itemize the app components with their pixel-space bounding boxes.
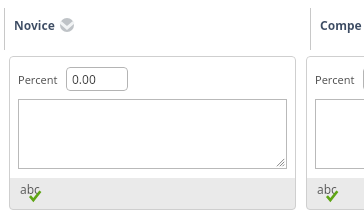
staticText: 0.00 — [72, 71, 96, 87]
staticText: Novice — [14, 17, 55, 33]
button[interactable] — [315, 99, 364, 169]
staticText: abc — [20, 181, 40, 197]
staticText: Compe — [320, 17, 362, 33]
button[interactable]: Compe — [320, 17, 362, 33]
staticText: Percent — [18, 72, 58, 87]
button[interactable]: Spell check passed — [316, 181, 346, 205]
button[interactable]: Spell check passed — [19, 181, 49, 205]
button[interactable]: Collapse section — [60, 18, 74, 32]
button[interactable]: Novice — [14, 17, 74, 33]
staticText: Percent — [315, 72, 355, 87]
button[interactable]: 0.00 — [66, 67, 128, 91]
staticText: abc — [317, 181, 337, 197]
button[interactable]: 0.00 — [363, 67, 364, 91]
button[interactable] — [18, 99, 287, 169]
